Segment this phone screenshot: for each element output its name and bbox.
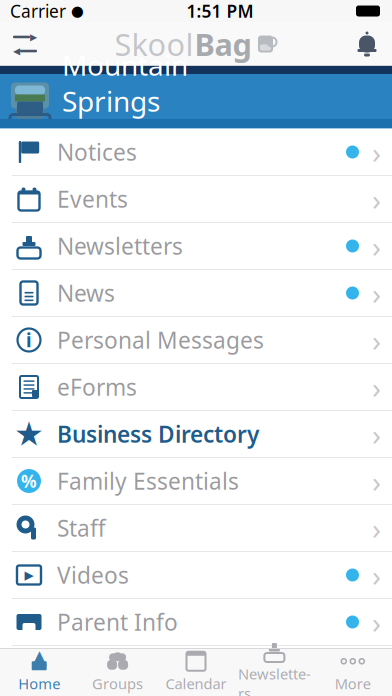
staticText: › xyxy=(372,508,381,547)
button[interactable]: Parent Info xyxy=(0,599,392,646)
button[interactable]: % xyxy=(0,458,392,505)
staticText: Mountain xyxy=(62,46,188,83)
staticText: › xyxy=(372,461,381,500)
button[interactable]: ★ xyxy=(0,411,392,458)
staticText: Family Essentials xyxy=(57,466,239,496)
staticText: Newsletters xyxy=(238,664,311,696)
staticText: › xyxy=(372,602,381,641)
staticText: ● xyxy=(71,3,84,19)
staticText: Springs School xyxy=(62,82,160,157)
staticText: i xyxy=(26,328,32,352)
button[interactable]: ▲ xyxy=(0,648,78,696)
staticText: Calendar xyxy=(165,674,226,693)
staticText: Videos xyxy=(57,560,129,590)
staticText: % xyxy=(21,469,37,492)
staticText: › xyxy=(372,132,381,171)
staticText: › xyxy=(372,320,381,359)
staticText: Bag xyxy=(194,24,251,64)
staticText: Groups xyxy=(92,674,143,693)
button[interactable]: Newsletters xyxy=(235,648,314,696)
button[interactable]: Notices xyxy=(0,129,392,176)
staticText: › xyxy=(372,414,381,453)
staticText: Skool xyxy=(114,24,193,64)
button[interactable]: Newsletters xyxy=(0,223,392,270)
staticText: › xyxy=(372,226,381,265)
staticText: ▲ xyxy=(32,646,46,667)
button[interactable]: Notifications xyxy=(342,22,392,66)
staticText: Carrier xyxy=(10,0,66,22)
staticText: 1:51 PM xyxy=(186,0,253,22)
staticText: ◀ xyxy=(13,46,20,56)
staticText: ★ xyxy=(14,415,44,453)
staticText: Notices xyxy=(57,137,137,167)
staticText: Events xyxy=(57,184,128,214)
staticText: More xyxy=(335,674,371,693)
button[interactable]: Calendar xyxy=(157,648,235,696)
button[interactable]: Staff xyxy=(0,505,392,552)
staticText: › xyxy=(372,367,381,406)
staticText: ▶ xyxy=(24,568,33,582)
staticText: Home xyxy=(18,674,60,693)
staticText: Newsletters xyxy=(57,231,183,261)
staticText: Personal Messages xyxy=(57,325,264,355)
staticText: News xyxy=(57,278,115,308)
staticText: › xyxy=(372,273,381,312)
staticText: › xyxy=(372,179,381,218)
button[interactable]: eForms xyxy=(0,364,392,411)
staticText: › xyxy=(372,555,381,594)
button[interactable]: ▶ xyxy=(0,552,392,599)
staticText: eForms xyxy=(57,372,137,402)
staticText: ▶ xyxy=(30,32,37,42)
button[interactable]: News xyxy=(0,270,392,317)
button[interactable]: Events xyxy=(0,176,392,223)
button[interactable]: Switch school xyxy=(0,22,50,66)
staticText: Business Directory xyxy=(57,419,259,449)
button[interactable]: More xyxy=(314,648,392,696)
staticText: Parent Info xyxy=(57,607,178,637)
staticText: Staff xyxy=(57,513,106,543)
button[interactable]: i xyxy=(0,317,392,364)
button[interactable]: Groups xyxy=(78,648,157,696)
